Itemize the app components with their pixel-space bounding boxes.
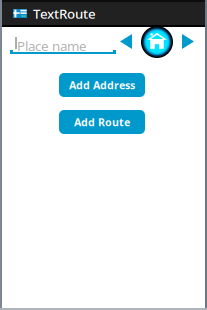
staticText: Add Route (74, 115, 130, 129)
button[interactable]: Home (141, 26, 173, 58)
staticText: Add Address (69, 78, 135, 92)
button[interactable]: Add Route (59, 110, 145, 134)
button[interactable]: Add Address (59, 73, 145, 97)
button[interactable]: Previous place (120, 34, 132, 49)
staticText: Place name (17, 37, 87, 55)
button[interactable]: Next place (182, 34, 194, 49)
staticText: TextRoute (33, 5, 96, 22)
